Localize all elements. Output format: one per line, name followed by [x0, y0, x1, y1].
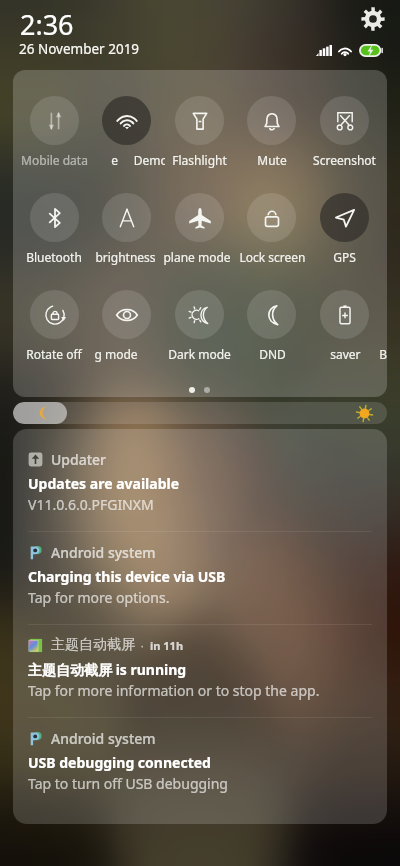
staticText: V11.0.6.0.PFGINXM [28, 495, 154, 514]
button[interactable]: Brightness [13, 402, 387, 424]
button[interactable]: Bluetooth [30, 193, 79, 242]
staticText: USB debugging connected [28, 753, 211, 772]
button[interactable]: 主题自动截屏 [13, 621, 387, 714]
staticText: saver Ba [330, 346, 387, 362]
staticText: Rotate off [26, 346, 82, 362]
staticText: Charging this device via USB [28, 567, 226, 586]
staticText: plane mode [163, 249, 231, 265]
button[interactable]: GPS [320, 193, 369, 242]
staticText: Bluetooth [26, 249, 82, 265]
staticText: brightness [95, 249, 156, 265]
staticText: Mobile data [21, 152, 88, 168]
staticText: Dark mode [168, 346, 231, 362]
staticText: 26 November 2019 [19, 40, 140, 58]
button[interactable]: plane mode [175, 193, 224, 242]
staticText: DND [259, 346, 286, 362]
staticText: 主题自动截屏 [51, 636, 135, 654]
staticText: Android system [51, 543, 156, 562]
staticText: Tap for more options. [28, 588, 170, 607]
staticText: Mute [257, 152, 287, 168]
staticText: Android system [51, 729, 156, 748]
staticText: 2:36 [20, 6, 74, 43]
staticText: Tap to turn off USB debugging [28, 774, 228, 793]
staticText: Updates are available [28, 474, 180, 493]
staticText: Tap for more information or to stop the … [28, 681, 320, 700]
button[interactable]: Android system [13, 528, 387, 621]
staticText: Screenshot [313, 152, 376, 168]
button[interactable]: Flashlight [175, 96, 224, 145]
button[interactable]: Android system [13, 714, 387, 807]
staticText: e Demo [111, 152, 165, 168]
button[interactable]: Rotate off [30, 290, 79, 339]
button[interactable]: Screenshot [320, 96, 369, 145]
button[interactable]: Mobile data [30, 96, 79, 145]
staticText: in 11h [150, 638, 184, 653]
button[interactable]: e Demo [102, 96, 151, 145]
staticText: GPS [333, 249, 356, 265]
staticText: Updater [51, 450, 107, 469]
button[interactable]: DND [247, 290, 296, 339]
button[interactable]: Lock screen [247, 193, 296, 242]
button[interactable]: g mode [102, 290, 151, 339]
button[interactable]: Settings [361, 7, 385, 31]
staticText: g mode [94, 346, 138, 362]
button[interactable]: Updater [13, 435, 387, 528]
staticText: · [135, 638, 150, 653]
button[interactable]: Dark mode [175, 290, 224, 339]
button[interactable]: saver Ba [320, 290, 369, 339]
button[interactable]: brightness [102, 193, 151, 242]
staticText: Flashlight [172, 152, 227, 168]
button[interactable]: Mute [247, 96, 296, 145]
staticText: 主题自动截屏 is running [28, 660, 187, 679]
staticText: Lock screen [239, 249, 306, 265]
